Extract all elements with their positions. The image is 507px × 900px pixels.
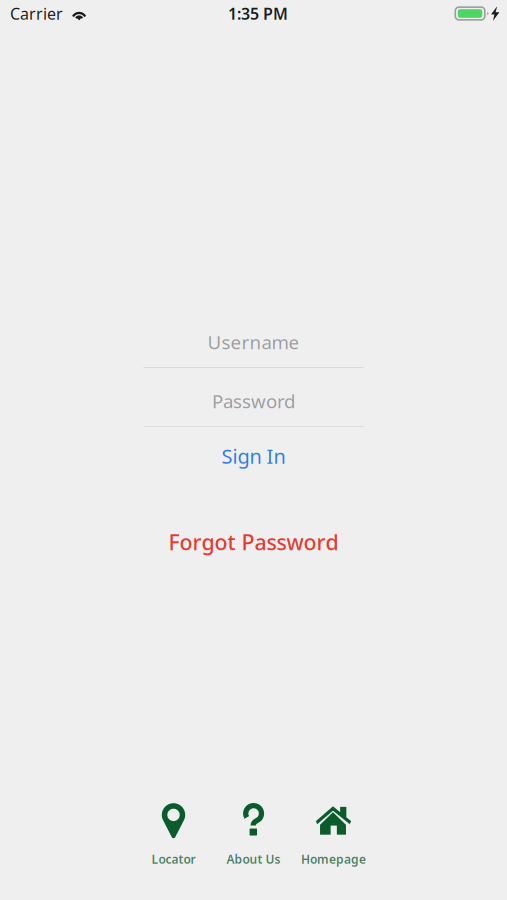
staticText: 1:35 PM <box>228 3 288 24</box>
button[interactable]: Sign In <box>221 435 285 477</box>
staticText: Locator <box>151 851 195 867</box>
button[interactable]: Forgot Password <box>168 529 338 555</box>
staticText: About Us <box>226 851 280 867</box>
staticText: Homepage <box>301 851 366 867</box>
staticText: Username <box>207 330 299 354</box>
button[interactable]: Homepage <box>293 803 373 864</box>
staticText: Sign In <box>221 443 285 469</box>
staticText: Password <box>212 389 295 413</box>
button[interactable]: Locator <box>133 803 213 864</box>
staticText: Carrier <box>10 3 63 24</box>
staticText: Forgot Password <box>168 528 338 556</box>
button[interactable]: About Us <box>213 803 293 864</box>
